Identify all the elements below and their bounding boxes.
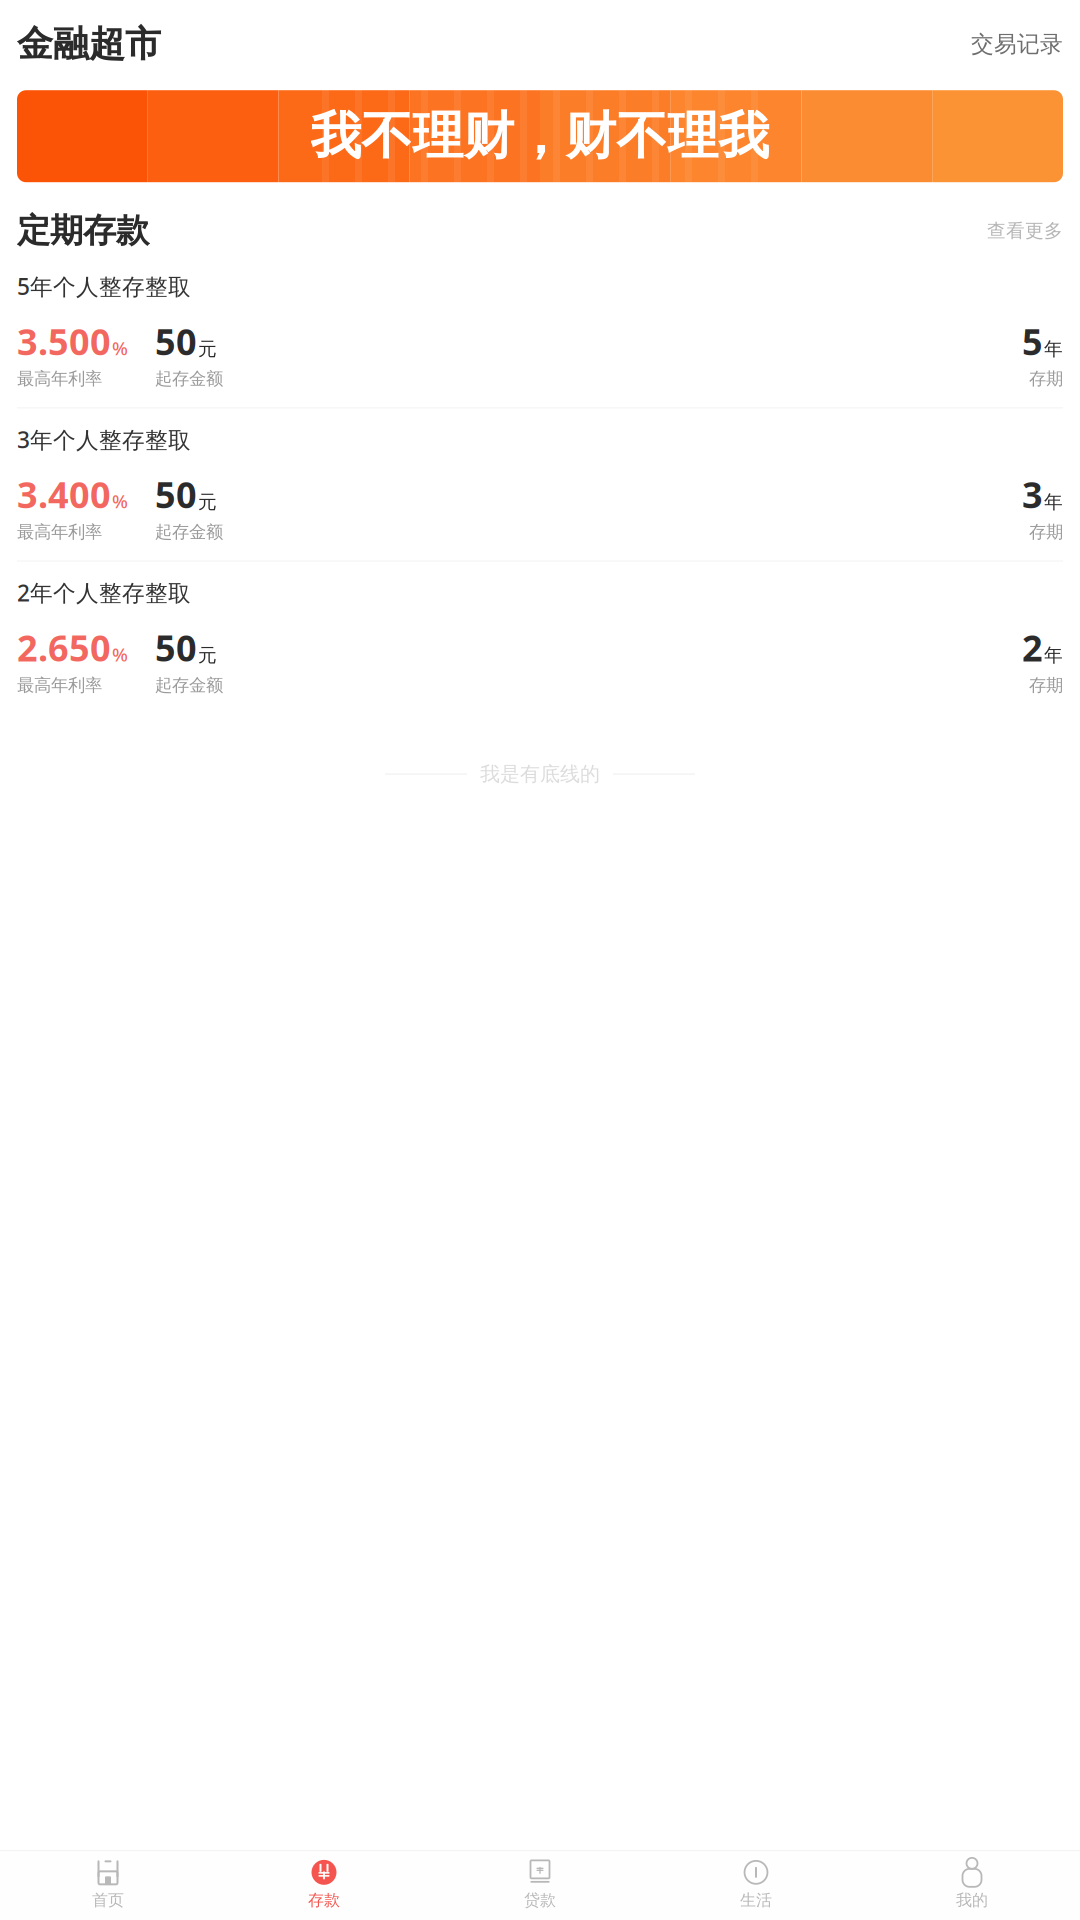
button[interactable]: 3年个人整存整取 [17,408,1063,561]
staticText: 50 [155,624,197,671]
staticText: 年 [1044,337,1063,360]
staticText: 我不理财，财不理我 [310,105,769,167]
button[interactable]: 交易记录 [971,30,1063,58]
button[interactable]: 生活 [648,1851,864,1920]
button[interactable]: 贷款 [432,1851,648,1920]
staticText: 最高年利率 [17,674,102,696]
staticText: % [112,642,128,667]
staticText: 3.400 [17,470,111,518]
staticText: 50 [155,317,197,365]
staticText: 5 [1022,317,1043,365]
staticText: 存款 [308,1890,340,1910]
staticText: 3年个人整存整取 [17,424,191,454]
staticText: 2 [1022,624,1043,671]
staticText: 元 [198,644,217,667]
staticText: 3.500 [17,317,111,365]
staticText: 年 [1044,644,1063,667]
staticText: 存期 [1029,521,1063,543]
staticText: 贷款 [524,1890,556,1910]
staticText: 2.650 [17,624,111,671]
button[interactable]: 2年个人整存整取 [17,562,1063,714]
button[interactable]: 查看更多 [987,219,1063,242]
staticText: 查看更多 [987,219,1063,242]
staticText: 我是有底线的 [480,762,600,786]
staticText: 金融超市 [17,22,161,66]
button[interactable]: 首页 [0,1851,216,1920]
staticText: 起存金额 [155,674,223,696]
staticText: % [112,335,128,360]
staticText: 交易记录 [971,30,1063,58]
staticText: 3 [1022,470,1043,518]
staticText: % [112,489,128,513]
staticText: 元 [198,337,217,360]
staticText: 年 [1044,491,1063,514]
staticText: 起存金额 [155,521,223,543]
staticText: 定期存款 [17,210,149,251]
staticText: 我的 [956,1890,988,1910]
button[interactable]: 我不理财，财不理我 [17,90,1063,182]
staticText: 最高年利率 [17,368,102,389]
staticText: 首页 [92,1890,124,1910]
staticText: 5年个人整存整取 [17,271,191,301]
staticText: 生活 [740,1890,772,1910]
button[interactable]: 5年个人整存整取 [17,255,1063,407]
staticText: 存期 [1029,674,1063,696]
staticText: 50 [155,470,197,518]
staticText: 元 [198,491,217,514]
button[interactable]: 存款 [216,1851,432,1920]
staticText: 起存金额 [155,368,223,389]
staticText: 2年个人整存整取 [17,578,191,608]
staticText: 最高年利率 [17,521,102,543]
button[interactable]: 我的 [864,1851,1080,1920]
staticText: 存期 [1029,368,1063,389]
